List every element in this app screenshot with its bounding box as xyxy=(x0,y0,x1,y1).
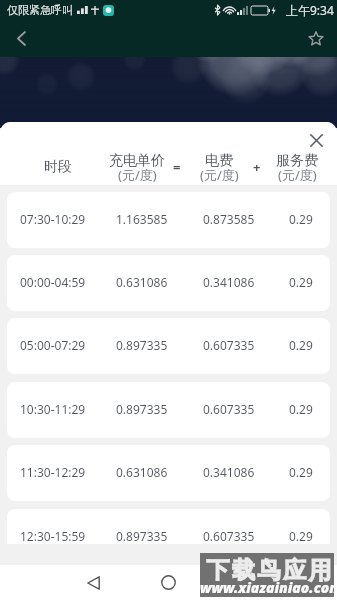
staticText: 0.29 xyxy=(289,274,313,290)
button[interactable]: 10:30-11:29 xyxy=(7,382,330,438)
button[interactable]: Back xyxy=(72,565,114,600)
staticText: 0.897335 xyxy=(116,337,168,353)
staticText: 0.607335 xyxy=(203,401,255,417)
button[interactable]: 12:30-15:59 xyxy=(7,509,330,544)
staticText: 0.341086 xyxy=(203,464,255,480)
staticText: 0.29 xyxy=(289,401,313,417)
staticText: (元/度) xyxy=(200,166,239,184)
button[interactable]: 11:30-12:29 xyxy=(7,445,330,501)
staticText: 0.29 xyxy=(289,464,313,480)
staticText: 0.29 xyxy=(289,337,313,353)
staticText: 0.631086 xyxy=(116,274,168,290)
staticText: 0.607335 xyxy=(203,528,255,544)
staticText: 0.897335 xyxy=(116,528,168,544)
button[interactable]: Back xyxy=(0,20,42,57)
staticText: 0.631086 xyxy=(116,464,168,480)
staticText: = xyxy=(173,158,181,176)
staticText: 00:00-04:59 xyxy=(20,274,86,290)
button[interactable]: 00:00-04:59 xyxy=(7,255,330,311)
button[interactable]: 07:30-10:29 xyxy=(7,192,330,248)
staticText: 服务费 xyxy=(276,152,318,170)
staticText: (元/度) xyxy=(118,166,157,184)
staticText: 0.897335 xyxy=(116,401,168,417)
staticText: + xyxy=(253,158,261,176)
staticText: 12:30-15:59 xyxy=(20,528,86,544)
staticText: 10:30-11:29 xyxy=(20,401,86,417)
button[interactable]: 05:00-07:29 xyxy=(7,318,330,374)
button[interactable]: Close xyxy=(303,127,329,153)
staticText: 11:30-12:29 xyxy=(20,464,86,480)
staticText: 仅限紧急呼叫 xyxy=(7,3,73,17)
staticText: 电费 xyxy=(205,152,233,170)
staticText: 0.29 xyxy=(289,528,313,544)
staticText: 0.607335 xyxy=(203,337,255,353)
staticText: 0.873585 xyxy=(203,211,255,227)
staticText: 07:30-10:29 xyxy=(20,211,86,227)
button[interactable]: Home xyxy=(147,565,189,600)
staticText: 1.163585 xyxy=(116,211,168,227)
staticText: 下载鸟应用 xyxy=(205,556,333,585)
staticText: 0.341086 xyxy=(203,274,255,290)
button[interactable]: Recent apps xyxy=(222,565,264,600)
staticText: (元/度) xyxy=(278,166,317,184)
button[interactable]: Favorite xyxy=(295,20,337,57)
staticText: 时段 xyxy=(44,158,72,176)
staticText: 05:00-07:29 xyxy=(20,337,86,353)
staticText: www.xiazainiao.com xyxy=(200,578,334,597)
staticText: 上午9:34 xyxy=(286,2,334,18)
staticText: 0.29 xyxy=(289,211,313,227)
staticText: 充电单价 xyxy=(109,152,165,170)
